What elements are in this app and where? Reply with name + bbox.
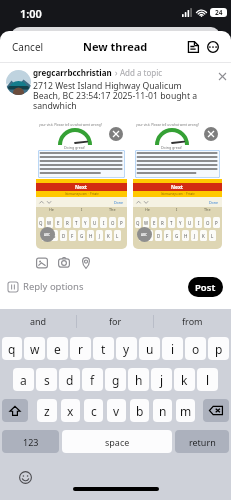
staticText: gregcarrbcchristian: [33, 67, 112, 78]
staticText: and: [30, 315, 47, 327]
staticText: O: [206, 220, 210, 226]
button[interactable]: s: [36, 368, 57, 391]
staticText: I: [198, 220, 200, 226]
button[interactable]: h: [128, 368, 149, 391]
button[interactable]: f: [82, 368, 103, 391]
staticText: listensurveys.com · Private: [65, 192, 99, 196]
staticText: u: [146, 341, 154, 357]
button[interactable]: Drafts: [184, 38, 202, 56]
staticText: s: [44, 372, 50, 388]
staticText: Q: [39, 220, 43, 226]
staticText: b: [136, 403, 144, 419]
button[interactable]: l: [197, 368, 218, 391]
staticText: k: [181, 372, 188, 388]
button[interactable]: from: [154, 309, 231, 333]
button[interactable]: e: [47, 337, 68, 360]
staticText: P: [120, 220, 123, 226]
staticText: d: [66, 372, 74, 388]
staticText: W: [47, 220, 52, 226]
button[interactable]: d: [59, 368, 80, 391]
staticText: a: [20, 372, 27, 388]
staticText: j: [160, 372, 164, 388]
staticText: return: [189, 436, 216, 448]
staticText: m: [180, 403, 192, 419]
staticText: A: [44, 233, 47, 239]
button[interactable]: a: [13, 368, 34, 391]
staticText: The: [204, 207, 211, 212]
button[interactable]: Post: [188, 277, 223, 297]
staticText: R: [161, 220, 164, 226]
button[interactable]: Reply options: [8, 276, 84, 297]
staticText: U: [93, 220, 97, 226]
button[interactable]: Location: [76, 253, 96, 273]
button[interactable]: p: [208, 337, 229, 360]
staticText: G: [80, 233, 84, 239]
staticText: I: [176, 207, 178, 212]
staticText: L: [211, 233, 214, 239]
button[interactable]: and: [0, 309, 77, 333]
staticText: E: [57, 220, 60, 226]
staticText: L: [116, 233, 119, 239]
button[interactable]: m: [176, 399, 195, 422]
staticText: e: [54, 341, 61, 357]
button[interactable]: c: [84, 399, 103, 422]
button[interactable]: Add photo: [32, 253, 52, 273]
staticText: New thread: [83, 39, 148, 54]
staticText: Done: [114, 200, 124, 205]
button[interactable]: Backspace: [203, 399, 229, 422]
button[interactable]: More options: [204, 38, 222, 56]
button[interactable]: n: [153, 399, 172, 422]
staticText: g: [112, 372, 120, 388]
staticText: Next: [171, 184, 184, 191]
button[interactable]: b: [130, 399, 149, 422]
button[interactable]: Camera: [54, 253, 74, 273]
button[interactable]: x: [61, 399, 80, 422]
button[interactable]: Shift: [2, 399, 28, 422]
button[interactable]: Emoji: [19, 471, 32, 484]
button[interactable]: Remove: [213, 67, 231, 85]
button[interactable]: Profile picture: [6, 70, 31, 95]
button[interactable]: 123: [2, 430, 59, 453]
staticText: 123: [23, 436, 39, 448]
button[interactable]: t: [93, 337, 114, 360]
button[interactable]: space: [62, 430, 172, 453]
staticText: ABC: [44, 233, 51, 237]
staticText: I: [103, 220, 105, 226]
staticText: q: [8, 341, 16, 357]
button[interactable]: Attached screenshot: [133, 121, 222, 249]
button[interactable]: q: [2, 337, 22, 360]
button[interactable]: u: [139, 337, 160, 360]
staticText: 1:00: [20, 6, 42, 21]
staticText: Next: [75, 184, 88, 191]
button[interactable]: k: [174, 368, 195, 391]
staticText: h: [135, 372, 143, 388]
staticText: w: [30, 341, 40, 357]
staticText: n: [159, 403, 167, 419]
button[interactable]: z: [37, 399, 57, 422]
button[interactable]: r: [70, 337, 91, 360]
button[interactable]: return: [175, 430, 229, 453]
button[interactable]: Cancel: [0, 34, 52, 60]
button[interactable]: Attached screenshot: [36, 121, 127, 249]
staticText: p: [215, 341, 223, 357]
button[interactable]: v: [107, 399, 126, 422]
button[interactable]: for: [77, 309, 154, 333]
staticText: from: [182, 315, 203, 327]
staticText: Post: [195, 281, 216, 294]
staticText: Q: [136, 220, 140, 226]
staticText: x: [67, 403, 74, 419]
button[interactable]: i: [162, 337, 183, 360]
button[interactable]: j: [151, 368, 172, 391]
staticText: l: [206, 372, 210, 388]
button[interactable]: g: [105, 368, 126, 391]
button[interactable]: w: [24, 337, 45, 360]
staticText: Doing great!: [64, 145, 86, 150]
staticText: y: [123, 341, 130, 357]
staticText: c: [91, 403, 97, 419]
staticText: D: [62, 233, 66, 239]
button[interactable]: y: [116, 337, 137, 360]
button[interactable]: o: [185, 337, 206, 360]
staticText: J: [194, 233, 196, 239]
staticText: z: [44, 403, 50, 419]
staticText: E: [153, 220, 156, 226]
